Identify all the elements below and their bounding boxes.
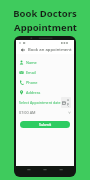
staticText: Book Doctors (13, 7, 77, 20)
staticText: Name (26, 60, 37, 65)
button[interactable]: Back (19, 46, 26, 53)
button[interactable]: Name (19, 57, 71, 67)
staticText: Select Appointment date (19, 100, 61, 105)
staticText: Book an appointment (28, 47, 72, 53)
staticText: 07:00 AM (19, 110, 36, 115)
button[interactable]: Submit (20, 121, 70, 128)
staticText: Email (26, 70, 36, 75)
staticText: Address (26, 90, 41, 95)
button[interactable]: update (62, 98, 70, 107)
button[interactable]: Address (19, 87, 71, 97)
staticText: Submit (39, 122, 52, 127)
other: Expand (68, 111, 71, 114)
staticText: Phone (26, 80, 38, 85)
button[interactable]: 07:00 AM (19, 108, 71, 117)
button[interactable]: Email (19, 67, 71, 77)
button[interactable]: Phone (19, 77, 71, 87)
staticText: Appointment (14, 21, 77, 34)
staticText: update (67, 98, 70, 107)
